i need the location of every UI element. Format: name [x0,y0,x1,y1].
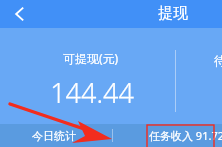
button[interactable]: 待结算 [214,53,222,68]
button[interactable]: 任务收入 91.72 元 [113,124,222,147]
button[interactable]: Back [6,0,34,28]
staticText: 今日统计 [32,129,76,143]
staticText: 可提现(元) [63,50,119,66]
staticText: 提现 [158,4,188,23]
staticText: 144.44 [50,74,134,111]
button[interactable]: 今日统计 [0,124,112,147]
staticText: 任务收入 91.72 元 [149,128,222,143]
staticText: 待结算 [214,53,222,68]
